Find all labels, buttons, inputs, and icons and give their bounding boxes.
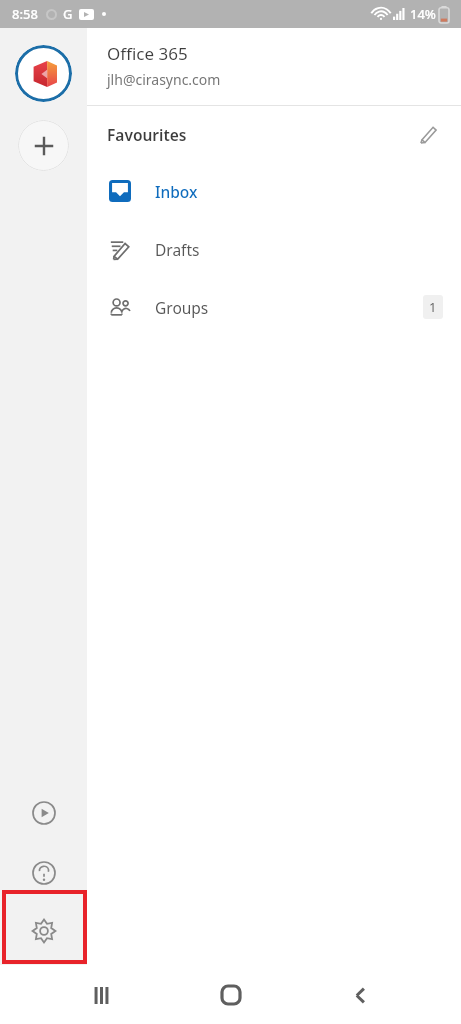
button[interactable]: Home xyxy=(203,967,259,1023)
staticText: 14% xyxy=(410,5,436,23)
button[interactable]: Add account xyxy=(18,120,69,171)
staticText: jlh@cirasync.com xyxy=(107,70,221,89)
staticText: G xyxy=(63,5,73,23)
button[interactable]: Office 365 account xyxy=(15,45,72,102)
button[interactable]: What's new xyxy=(16,785,72,841)
staticText: Drafts xyxy=(155,239,200,260)
staticText: 8:58 xyxy=(12,5,38,23)
staticText: Inbox xyxy=(155,181,198,202)
staticText: 1 xyxy=(429,298,437,316)
staticText: Office 365 xyxy=(107,42,188,65)
staticText: Groups xyxy=(155,297,209,318)
button[interactable]: Edit favourites xyxy=(413,119,443,149)
button[interactable]: Inbox xyxy=(87,162,461,220)
button[interactable]: Help xyxy=(16,845,72,901)
button[interactable]: Favourites xyxy=(87,106,461,162)
button[interactable]: Settings xyxy=(16,903,72,959)
button[interactable]: Filter xyxy=(300,97,377,137)
button[interactable]: Groups xyxy=(87,278,461,336)
button[interactable]: Back xyxy=(332,967,388,1023)
staticText: Favourites xyxy=(107,124,187,145)
button[interactable]: Drafts xyxy=(87,220,461,278)
button[interactable]: Recents xyxy=(73,967,129,1023)
